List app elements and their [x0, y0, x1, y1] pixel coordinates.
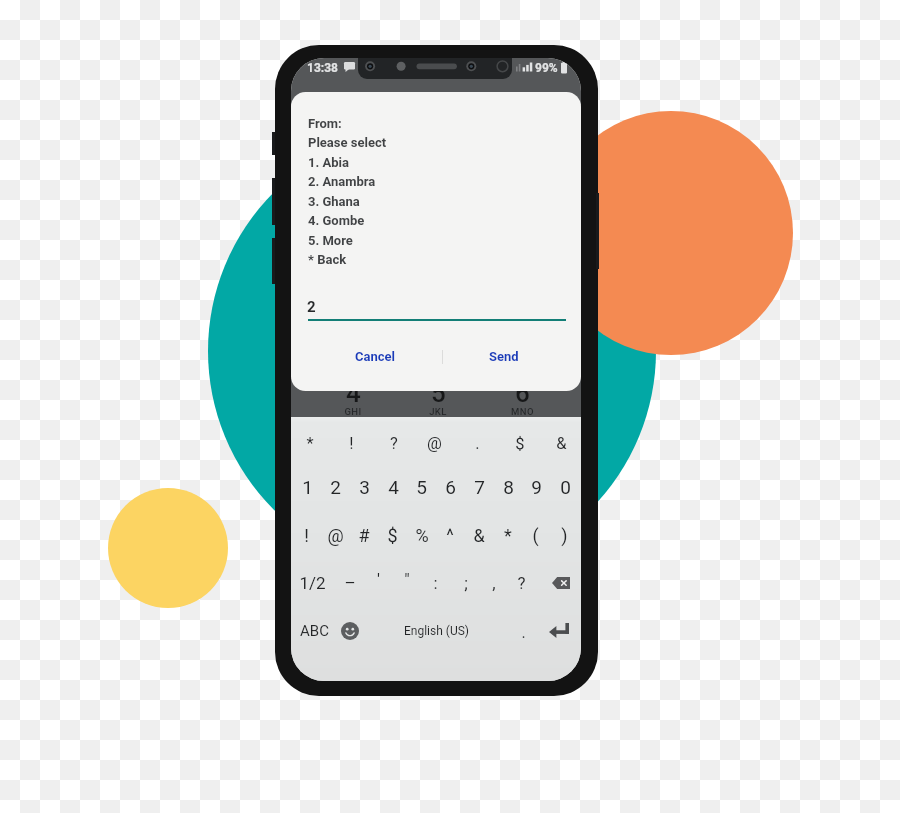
staticText: English (US): [404, 624, 469, 638]
staticText: ): [561, 525, 568, 546]
button[interactable]: 9: [522, 464, 551, 510]
staticText: ": [404, 569, 410, 589]
button[interactable]: English (US): [394, 608, 478, 654]
button[interactable]: .: [509, 609, 538, 655]
staticText: 1/2: [299, 573, 326, 593]
staticText: ;: [464, 573, 468, 593]
button[interactable]: 3: [350, 464, 379, 510]
staticText: 99%: [535, 61, 558, 75]
staticText: 5: [431, 378, 446, 406]
staticText: 7: [474, 476, 485, 498]
button[interactable]: 1/2: [298, 560, 327, 606]
staticText: ,: [492, 573, 496, 593]
staticText: 5: [416, 476, 427, 498]
button[interactable]: ,: [479, 560, 508, 606]
staticText: %: [415, 525, 429, 546]
button[interactable]: 8: [494, 464, 523, 510]
staticText: (: [532, 525, 539, 546]
button[interactable]: :: [421, 560, 450, 606]
button[interactable]: &: [464, 512, 493, 558]
staticText: 1. Abia: [308, 155, 349, 170]
staticText: 0: [560, 476, 571, 498]
staticText: *: [504, 525, 512, 546]
button[interactable]: 4: [379, 464, 408, 510]
staticText: #: [358, 525, 370, 546]
staticText: &: [473, 525, 485, 546]
staticText: 3: [359, 476, 370, 498]
staticText: ?: [517, 573, 526, 593]
staticText: 6: [515, 378, 530, 406]
staticText: 13:38: [307, 61, 338, 75]
button[interactable]: 5: [407, 464, 436, 510]
staticText: 9: [531, 476, 542, 498]
staticText: 2: [307, 298, 316, 316]
button[interactable]: Send: [462, 343, 546, 370]
staticText: 8: [503, 476, 514, 498]
staticText: 4: [388, 476, 399, 498]
button[interactable]: Enter: [549, 623, 569, 637]
button[interactable]: Backspace: [552, 577, 570, 589]
button[interactable]: &: [547, 420, 576, 466]
staticText: GHI: [344, 406, 362, 417]
staticText: !: [304, 525, 309, 546]
button[interactable]: .: [463, 420, 492, 466]
staticText: $: [515, 434, 525, 453]
button[interactable]: @: [321, 512, 350, 558]
staticText: ?: [390, 434, 398, 453]
button[interactable]: 1: [293, 464, 322, 510]
button[interactable]: 2: [321, 464, 350, 510]
button[interactable]: $: [505, 420, 534, 466]
button[interactable]: (: [521, 512, 550, 558]
button[interactable]: #: [349, 512, 378, 558]
button[interactable]: !: [337, 420, 366, 466]
button[interactable]: ;: [451, 560, 480, 606]
button[interactable]: ): [550, 512, 579, 558]
button[interactable]: ?: [507, 560, 536, 606]
button[interactable]: %: [407, 512, 436, 558]
staticText: 2. Anambra: [308, 174, 376, 189]
button[interactable]: Cancel: [333, 343, 417, 370]
staticText: MNO: [511, 406, 534, 417]
staticText: $: [387, 525, 398, 546]
button[interactable]: !: [292, 512, 321, 558]
staticText: ': [377, 569, 380, 589]
staticText: 6: [445, 476, 456, 498]
button[interactable]: ABC: [300, 608, 329, 654]
staticText: 5. More: [308, 233, 353, 248]
button[interactable]: ': [364, 556, 393, 602]
staticText: *: [306, 434, 314, 453]
staticText: Send: [489, 349, 519, 364]
staticText: ^: [446, 525, 454, 546]
staticText: @: [327, 525, 344, 546]
staticText: 4: [346, 378, 361, 406]
staticText: !: [349, 434, 354, 453]
staticText: –: [344, 573, 356, 593]
button[interactable]: @: [420, 420, 449, 466]
button[interactable]: 0: [551, 464, 580, 510]
button[interactable]: 6: [436, 464, 465, 510]
staticText: .: [521, 623, 526, 642]
staticText: 1: [302, 476, 313, 498]
staticText: From:: [308, 116, 342, 131]
staticText: 2: [330, 476, 341, 498]
staticText: :: [433, 573, 438, 593]
button[interactable]: –: [335, 560, 364, 606]
button[interactable]: *: [295, 420, 324, 466]
staticText: 4. Gombe: [308, 213, 365, 228]
button[interactable]: 7: [465, 464, 494, 510]
button[interactable]: ": [392, 556, 421, 602]
button[interactable]: $: [378, 512, 407, 558]
staticText: Please select: [308, 135, 387, 150]
staticText: @: [427, 434, 442, 453]
staticText: * Back: [308, 252, 347, 267]
staticText: .: [475, 434, 480, 453]
staticText: &: [556, 434, 567, 453]
button[interactable]: ^: [435, 512, 464, 558]
button[interactable]: ?: [379, 420, 408, 466]
staticText: ABC: [300, 622, 329, 640]
staticText: 3. Ghana: [308, 194, 360, 209]
button[interactable]: *: [493, 512, 522, 558]
staticText: Cancel: [355, 349, 396, 364]
staticText: JKL: [429, 406, 447, 417]
button[interactable]: Emoji: [341, 622, 359, 640]
